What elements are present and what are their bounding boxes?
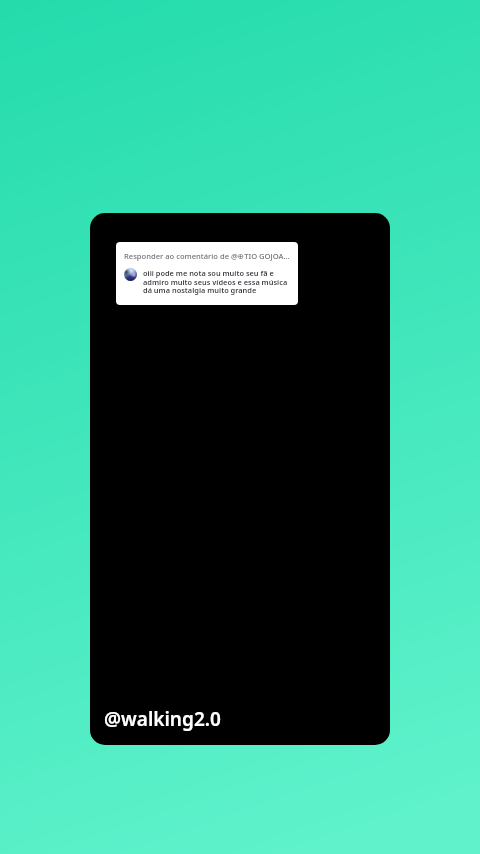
staticText: oiii pode me nota sou muito seu fã e adm… bbox=[143, 268, 288, 295]
button[interactable]: Story preview bbox=[90, 213, 390, 745]
staticText: Responder ao comentário de @⊕TIO GOJOA… bbox=[124, 251, 290, 261]
button[interactable]: Responder ao comentário de @⊕TIO GOJOA… bbox=[116, 242, 298, 305]
button[interactable]: @walking2.0 bbox=[104, 706, 221, 732]
